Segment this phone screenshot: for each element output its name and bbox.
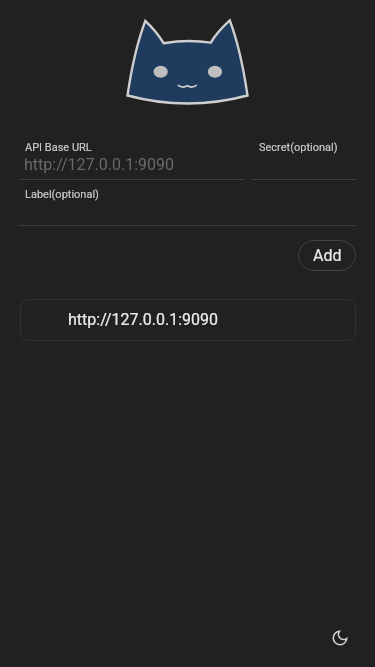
- staticText: Secret(optional): [259, 141, 338, 154]
- button[interactable]: Label(optional): [19, 183, 356, 226]
- button[interactable]: Toggle dark mode: [326, 624, 354, 652]
- staticText: Add: [313, 246, 342, 265]
- button[interactable]: Secret(optional): [252, 136, 356, 180]
- button[interactable]: Add: [298, 240, 356, 271]
- staticText: http://127.0.0.1:9090: [24, 155, 175, 174]
- button[interactable]: API Base URL: [19, 136, 244, 180]
- staticText: API Base URL: [25, 141, 92, 154]
- button[interactable]: http://127.0.0.1:9090: [20, 299, 356, 341]
- staticText: http://127.0.0.1:9090: [68, 310, 219, 329]
- staticText: Label(optional): [25, 188, 99, 201]
